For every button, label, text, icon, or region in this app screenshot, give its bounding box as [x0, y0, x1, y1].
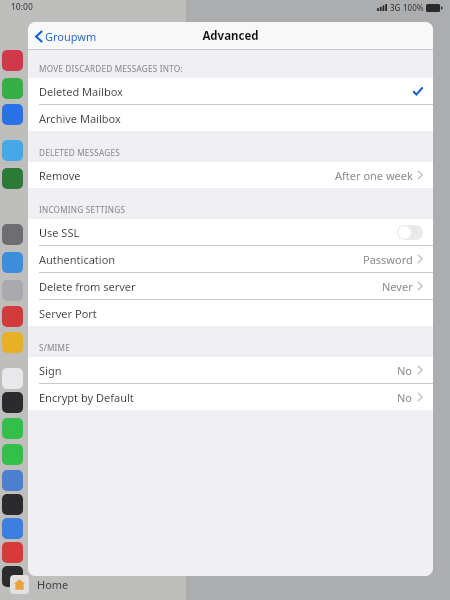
- button[interactable]: Groupwm: [28, 25, 103, 48]
- staticText: After one week: [335, 168, 413, 183]
- staticText: Never: [382, 279, 413, 294]
- staticText: 10:00: [11, 1, 33, 13]
- button[interactable]: Remove: [28, 162, 433, 188]
- staticText: S/MIME: [39, 342, 70, 353]
- staticText: Advanced: [202, 28, 259, 44]
- staticText: Use SSL: [39, 225, 80, 240]
- staticText: Groupwm: [45, 29, 97, 44]
- staticText: Encrypt by Default: [39, 390, 134, 405]
- button[interactable]: Use SSL toggle, off: [397, 225, 423, 240]
- button[interactable]: Archive Mailbox: [28, 105, 433, 131]
- staticText: Server Port: [39, 306, 97, 321]
- staticText: Delete from server: [39, 279, 136, 294]
- staticText: No: [397, 390, 413, 405]
- button[interactable]: Sign: [28, 357, 433, 383]
- staticText: DELETED MESSAGES: [39, 147, 120, 158]
- staticText: No: [397, 363, 413, 378]
- staticText: Authentication: [39, 252, 116, 267]
- staticText: Sign: [39, 363, 62, 378]
- button[interactable]: Encrypt by Default: [28, 384, 433, 410]
- staticText: Archive Mailbox: [39, 111, 121, 126]
- button[interactable]: Use SSL: [28, 219, 433, 245]
- staticText: Password: [363, 252, 413, 267]
- staticText: Remove: [39, 168, 81, 183]
- button[interactable]: Server Port: [28, 300, 433, 326]
- staticText: Deleted Mailbox: [39, 84, 123, 99]
- staticText: Home: [37, 577, 69, 592]
- staticText: 100%: [403, 2, 424, 13]
- staticText: 3G: [390, 2, 401, 13]
- button[interactable]: Deleted Mailbox: [28, 78, 433, 104]
- button[interactable]: Delete from server: [28, 273, 433, 299]
- other: Selected: [412, 86, 423, 97]
- button[interactable]: Authentication: [28, 246, 433, 272]
- button[interactable]: Home: [8, 573, 71, 596]
- staticText: INCOMING SETTINGS: [39, 204, 126, 215]
- staticText: MOVE DISCARDED MESSAGES INTO:: [39, 63, 183, 74]
